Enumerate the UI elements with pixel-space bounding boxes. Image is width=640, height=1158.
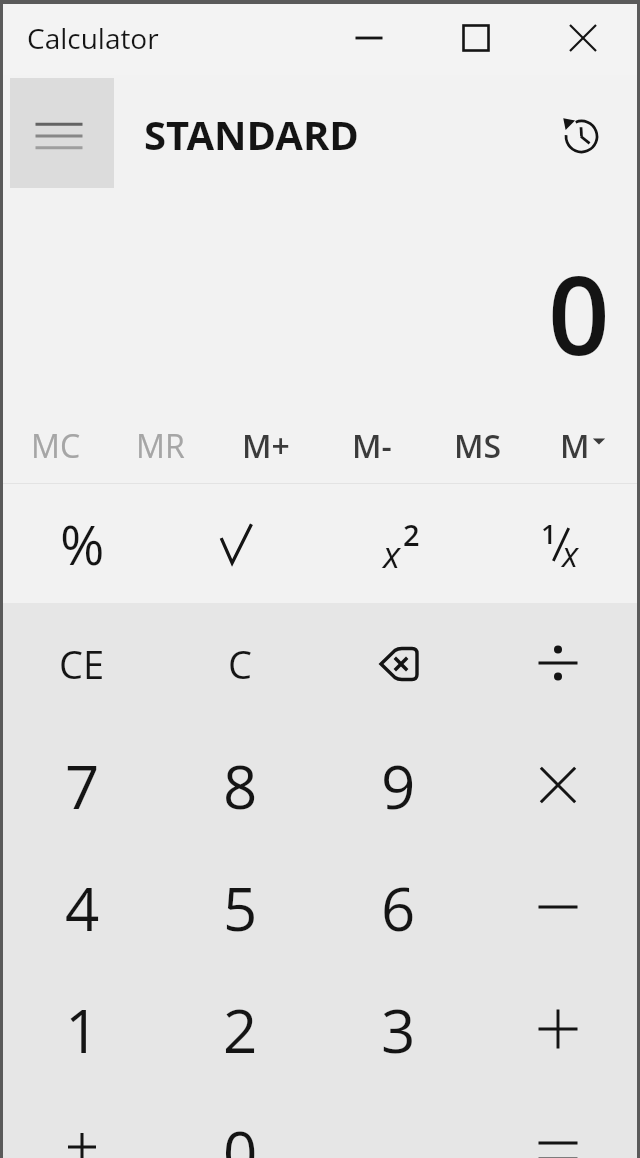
button[interactable]: CE [3,603,161,725]
button[interactable]: MR [108,409,213,483]
button[interactable]: C [161,603,319,725]
staticText: MC [31,424,81,468]
button[interactable]: Open Navigation [10,78,114,188]
staticText: 2 [223,989,258,1071]
button[interactable]: M+ [213,409,319,483]
button[interactable]: MS [425,409,531,483]
button[interactable]: Backspace [319,603,478,725]
button[interactable]: Squared [319,484,478,603]
button[interactable]: Square root [161,484,319,603]
button[interactable]: 9 [319,725,478,847]
button[interactable]: 4 [3,847,161,969]
button[interactable]: Divide [478,603,637,725]
button[interactable]: MC [3,409,108,483]
staticText: M [560,424,590,468]
button[interactable]: 0 [161,1091,319,1158]
staticText: C [228,638,252,690]
staticText: 1 [541,515,557,552]
button[interactable]: Plus [478,969,637,1091]
staticText: % [60,507,105,581]
button[interactable]: Close [529,2,636,73]
staticText: M- [352,424,392,468]
button[interactable]: 5 [161,847,319,969]
staticText: x [562,531,579,577]
staticText: 2 [403,515,420,554]
button[interactable]: 2 [161,969,319,1091]
button[interactable]: Multiply [478,725,637,847]
staticText: M+ [242,424,290,468]
staticText: 4 [65,867,100,949]
staticText: 5 [223,867,258,949]
staticText: x [383,530,401,579]
button[interactable]: 3 [319,969,478,1091]
button[interactable]: Equals [478,1091,637,1158]
button[interactable]: 7 [3,725,161,847]
staticText: CE [59,638,105,690]
button[interactable]: Positive negative [3,1091,161,1158]
button[interactable]: 1 [3,969,161,1091]
staticText: 6 [381,867,416,949]
button[interactable]: M- [319,409,425,483]
button[interactable]: Maximize [422,2,529,73]
button[interactable]: % [3,484,161,603]
button[interactable]: History [547,103,609,165]
staticText: STANDARD [144,107,359,161]
staticText: 0 [223,1111,258,1158]
staticText: 1 [65,989,100,1071]
staticText: Calculator [27,19,159,57]
staticText: 3 [381,989,416,1071]
staticText: MR [136,424,185,468]
staticText: 8 [223,745,258,827]
staticText: 0 [548,240,610,387]
button[interactable]: One over x [478,484,637,603]
button[interactable]: Memory options [531,409,637,483]
staticText: 9 [381,745,416,827]
button[interactable]: Minus [478,847,637,969]
button[interactable]: 6 [319,847,478,969]
button[interactable]: Minimize [315,2,422,73]
staticText: MS [454,424,502,468]
staticText: 7 [65,745,100,827]
button[interactable]: 8 [161,725,319,847]
